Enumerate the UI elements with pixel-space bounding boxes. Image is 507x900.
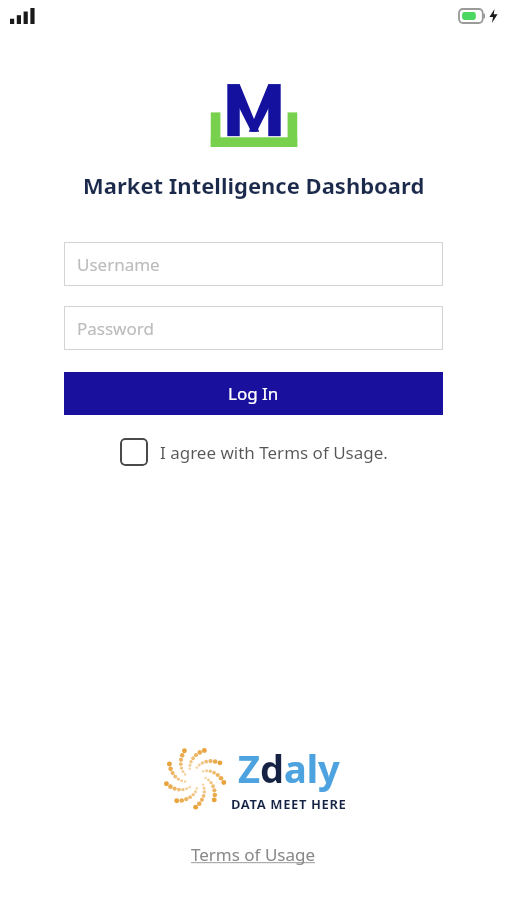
staticText: Username (77, 253, 160, 276)
button[interactable]: Username (64, 242, 443, 286)
staticText: I agree with Terms of Usage. (160, 441, 388, 464)
staticText: Password (77, 317, 154, 340)
staticText: Zdaly (238, 742, 340, 794)
staticText: Log In (228, 382, 279, 405)
staticText: DATA MEET HERE (231, 795, 347, 813)
button[interactable]: Log In (64, 372, 443, 415)
button[interactable]: Terms of Usage (185, 839, 322, 870)
staticText: Market Intelligence Dashboard (83, 170, 425, 200)
button[interactable]: Password (64, 306, 443, 350)
staticText: Terms of Usage (191, 843, 316, 866)
button[interactable]: I agree with Terms of Usage. (116, 436, 392, 468)
